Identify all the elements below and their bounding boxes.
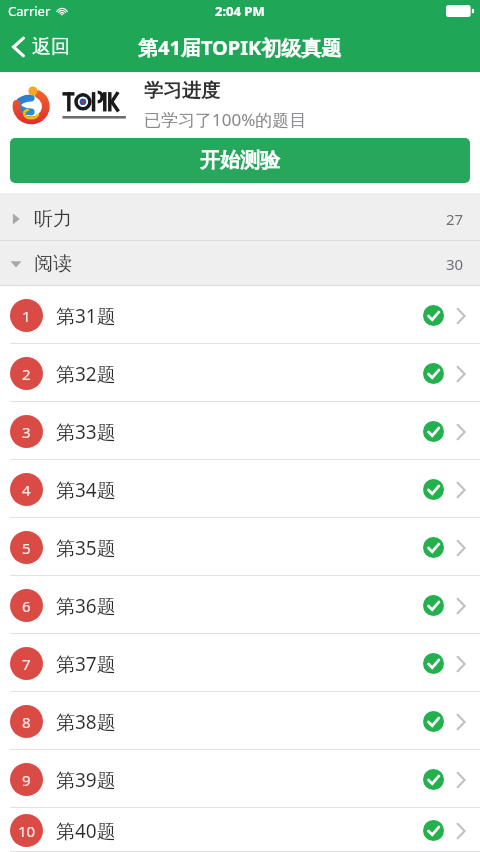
button[interactable]: 1 — [0, 286, 480, 344]
other: 已完成 — [423, 595, 444, 616]
button[interactable]: 7 — [0, 634, 480, 692]
staticText: 27 — [446, 209, 464, 229]
other: 已完成 — [423, 421, 444, 442]
button[interactable]: 3 — [0, 402, 480, 460]
staticText: 第33题 — [56, 419, 116, 445]
staticText: 第35题 — [56, 535, 116, 561]
staticText: 2:04 PM — [215, 2, 265, 20]
button[interactable]: 2 — [0, 344, 480, 402]
staticText: 第39题 — [56, 767, 116, 793]
staticText: 第32题 — [56, 361, 116, 387]
button[interactable]: 10 — [0, 808, 480, 852]
button[interactable]: 阅读 — [0, 241, 480, 286]
staticText: 第40题 — [56, 818, 116, 844]
staticText: 7 — [22, 654, 31, 674]
staticText: 学习进度 — [144, 79, 220, 103]
staticText: 4 — [22, 480, 31, 500]
other: 已完成 — [423, 305, 444, 326]
staticText: 第38题 — [56, 709, 116, 735]
other: 已完成 — [423, 479, 444, 500]
staticText: 8 — [22, 712, 31, 732]
button[interactable]: 5 — [0, 518, 480, 576]
button[interactable]: 4 — [0, 460, 480, 518]
staticText: 10 — [18, 821, 36, 841]
other: 已完成 — [423, 653, 444, 674]
staticText: 6 — [22, 596, 31, 616]
button[interactable]: 听力 — [0, 197, 480, 241]
staticText: 第36题 — [56, 593, 116, 619]
staticText: 3 — [22, 422, 31, 442]
other: 已完成 — [423, 769, 444, 790]
staticText: 5 — [22, 538, 31, 558]
staticText: 阅读 — [34, 252, 72, 276]
staticText: 1 — [22, 306, 31, 326]
staticText: 开始测验 — [200, 148, 280, 173]
button[interactable]: 返回 — [0, 22, 82, 72]
staticText: 30 — [446, 254, 464, 274]
staticText: 第31题 — [56, 303, 116, 329]
staticText: 听力 — [34, 207, 72, 231]
other: 已完成 — [423, 537, 444, 558]
other: 已完成 — [423, 711, 444, 732]
staticText: 2 — [22, 364, 31, 384]
button[interactable]: 开始测验 — [10, 138, 470, 183]
staticText: 返回 — [32, 35, 70, 59]
staticText: 第37题 — [56, 651, 116, 677]
staticText: 第41届TOPIK初级真题 — [138, 34, 342, 61]
staticText: 9 — [22, 770, 31, 790]
other: 已完成 — [423, 363, 444, 384]
button[interactable]: 8 — [0, 692, 480, 750]
other: 已完成 — [423, 820, 444, 841]
staticText: 第34题 — [56, 477, 116, 503]
staticText: 已学习了100%的题目 — [144, 108, 307, 131]
button[interactable]: 9 — [0, 750, 480, 808]
button[interactable]: 6 — [0, 576, 480, 634]
staticText: Carrier — [8, 2, 51, 20]
